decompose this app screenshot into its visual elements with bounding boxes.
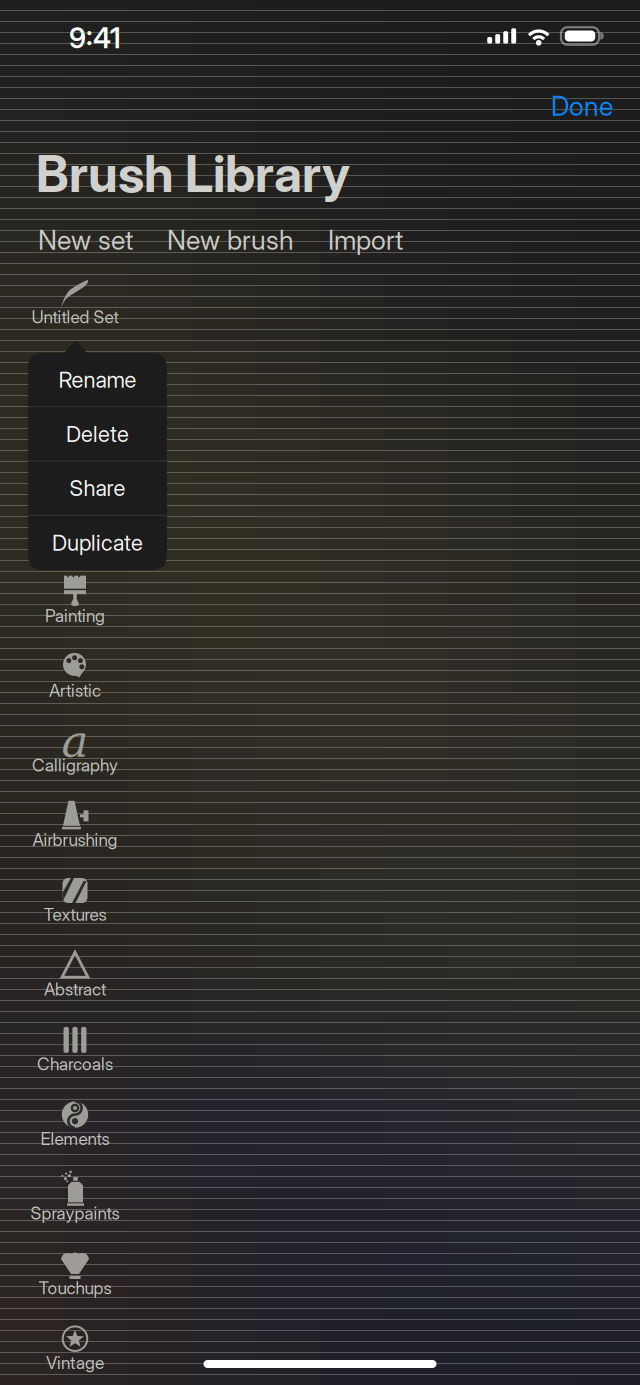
staticText: a: [61, 715, 88, 767]
button[interactable]: a: [0, 709, 150, 784]
button[interactable]: Touchups: [0, 1232, 150, 1307]
staticText: Painting: [45, 605, 105, 626]
staticText: Import: [328, 224, 403, 256]
button[interactable]: Vintage: [0, 1307, 150, 1381]
button[interactable]: Textures: [0, 858, 150, 933]
button[interactable]: Duplicate: [28, 515, 167, 570]
staticText: 9:41: [69, 21, 121, 55]
staticText: Abstract: [44, 979, 106, 1000]
staticText: Textures: [43, 904, 106, 925]
staticText: Spraypaints: [30, 1203, 119, 1224]
staticText: Share: [69, 475, 125, 501]
staticText: Rename: [58, 366, 136, 393]
staticText: Artistic: [49, 680, 101, 701]
button[interactable]: Charcoals: [0, 1008, 150, 1083]
button[interactable]: Painting: [0, 560, 150, 634]
button[interactable]: Abstract: [0, 933, 150, 1008]
staticText: Touchups: [38, 1277, 111, 1298]
staticText: New set: [38, 224, 133, 256]
staticText: New brush: [167, 224, 294, 256]
button[interactable]: Artistic: [0, 634, 150, 709]
staticText: Delete: [66, 421, 129, 447]
button[interactable]: Airbrushing: [0, 784, 150, 858]
staticText: Untitled Set: [31, 306, 118, 327]
button[interactable]: Untitled Set: [0, 261, 150, 336]
staticText: Done: [551, 90, 613, 122]
staticText: Elements: [40, 1128, 109, 1149]
staticText: Charcoals: [37, 1053, 113, 1074]
button[interactable]: Rename: [28, 353, 167, 407]
button[interactable]: Spraypaints: [0, 1157, 150, 1232]
staticText: Brush Library: [36, 143, 350, 204]
staticText: Vintage: [46, 1352, 104, 1373]
button[interactable]: Elements: [0, 1083, 150, 1157]
button[interactable]: Delete: [28, 407, 167, 461]
button[interactable]: Done: [524, 76, 640, 136]
button[interactable]: New set: [28, 215, 143, 265]
staticText: Airbrushing: [32, 829, 117, 850]
button[interactable]: New brush: [157, 215, 304, 265]
staticText: Calligraphy: [32, 755, 118, 776]
button[interactable]: Import: [318, 215, 413, 265]
button[interactable]: Share: [28, 461, 167, 516]
staticText: Duplicate: [52, 529, 143, 556]
